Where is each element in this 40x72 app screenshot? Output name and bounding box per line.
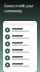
button[interactable] <box>3 33 37 40</box>
button[interactable] <box>3 54 37 61</box>
button[interactable] <box>3 26 37 33</box>
staticText: community <box>4 9 22 13</box>
button[interactable] <box>3 61 37 68</box>
staticText: Connect with your <box>4 3 34 8</box>
button[interactable] <box>3 47 37 54</box>
button[interactable] <box>3 40 37 47</box>
